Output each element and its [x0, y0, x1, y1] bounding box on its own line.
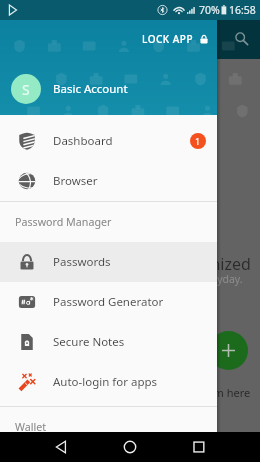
button[interactable]: LOCK APP — [142, 32, 209, 46]
button[interactable]: Add — [209, 331, 248, 370]
staticText: 70% — [199, 3, 220, 17]
staticText: LOCK APP — [142, 32, 193, 46]
staticText: Safe and sound, everyday. — [114, 272, 243, 286]
staticText: Password Generator — [53, 294, 164, 310]
button[interactable]: Dashboard — [0, 121, 217, 161]
staticText: Auto-login for apps — [53, 374, 158, 390]
staticText: Password Manager — [15, 215, 112, 230]
staticText: Basic Account — [53, 81, 128, 97]
staticText: Wallet — [15, 420, 47, 435]
staticText: Get started from here — [138, 385, 251, 400]
staticText: 1 — [195, 135, 201, 147]
button[interactable]: Secure Notes — [0, 322, 217, 362]
staticText: 16:58 — [229, 3, 256, 17]
staticText: Everything organized — [91, 253, 251, 275]
button[interactable]: Passwords — [0, 242, 217, 282]
staticText: Browser — [53, 173, 98, 189]
button[interactable]: Password Generator — [0, 282, 217, 322]
staticText: Dashboard — [53, 133, 113, 149]
staticText: Passwords — [53, 254, 111, 270]
button[interactable]: Auto-login for apps — [0, 362, 217, 402]
staticText: Secure Notes — [53, 334, 125, 350]
button[interactable]: Search — [229, 26, 253, 50]
staticText: S — [22, 80, 30, 99]
button[interactable]: Browser — [0, 161, 217, 201]
